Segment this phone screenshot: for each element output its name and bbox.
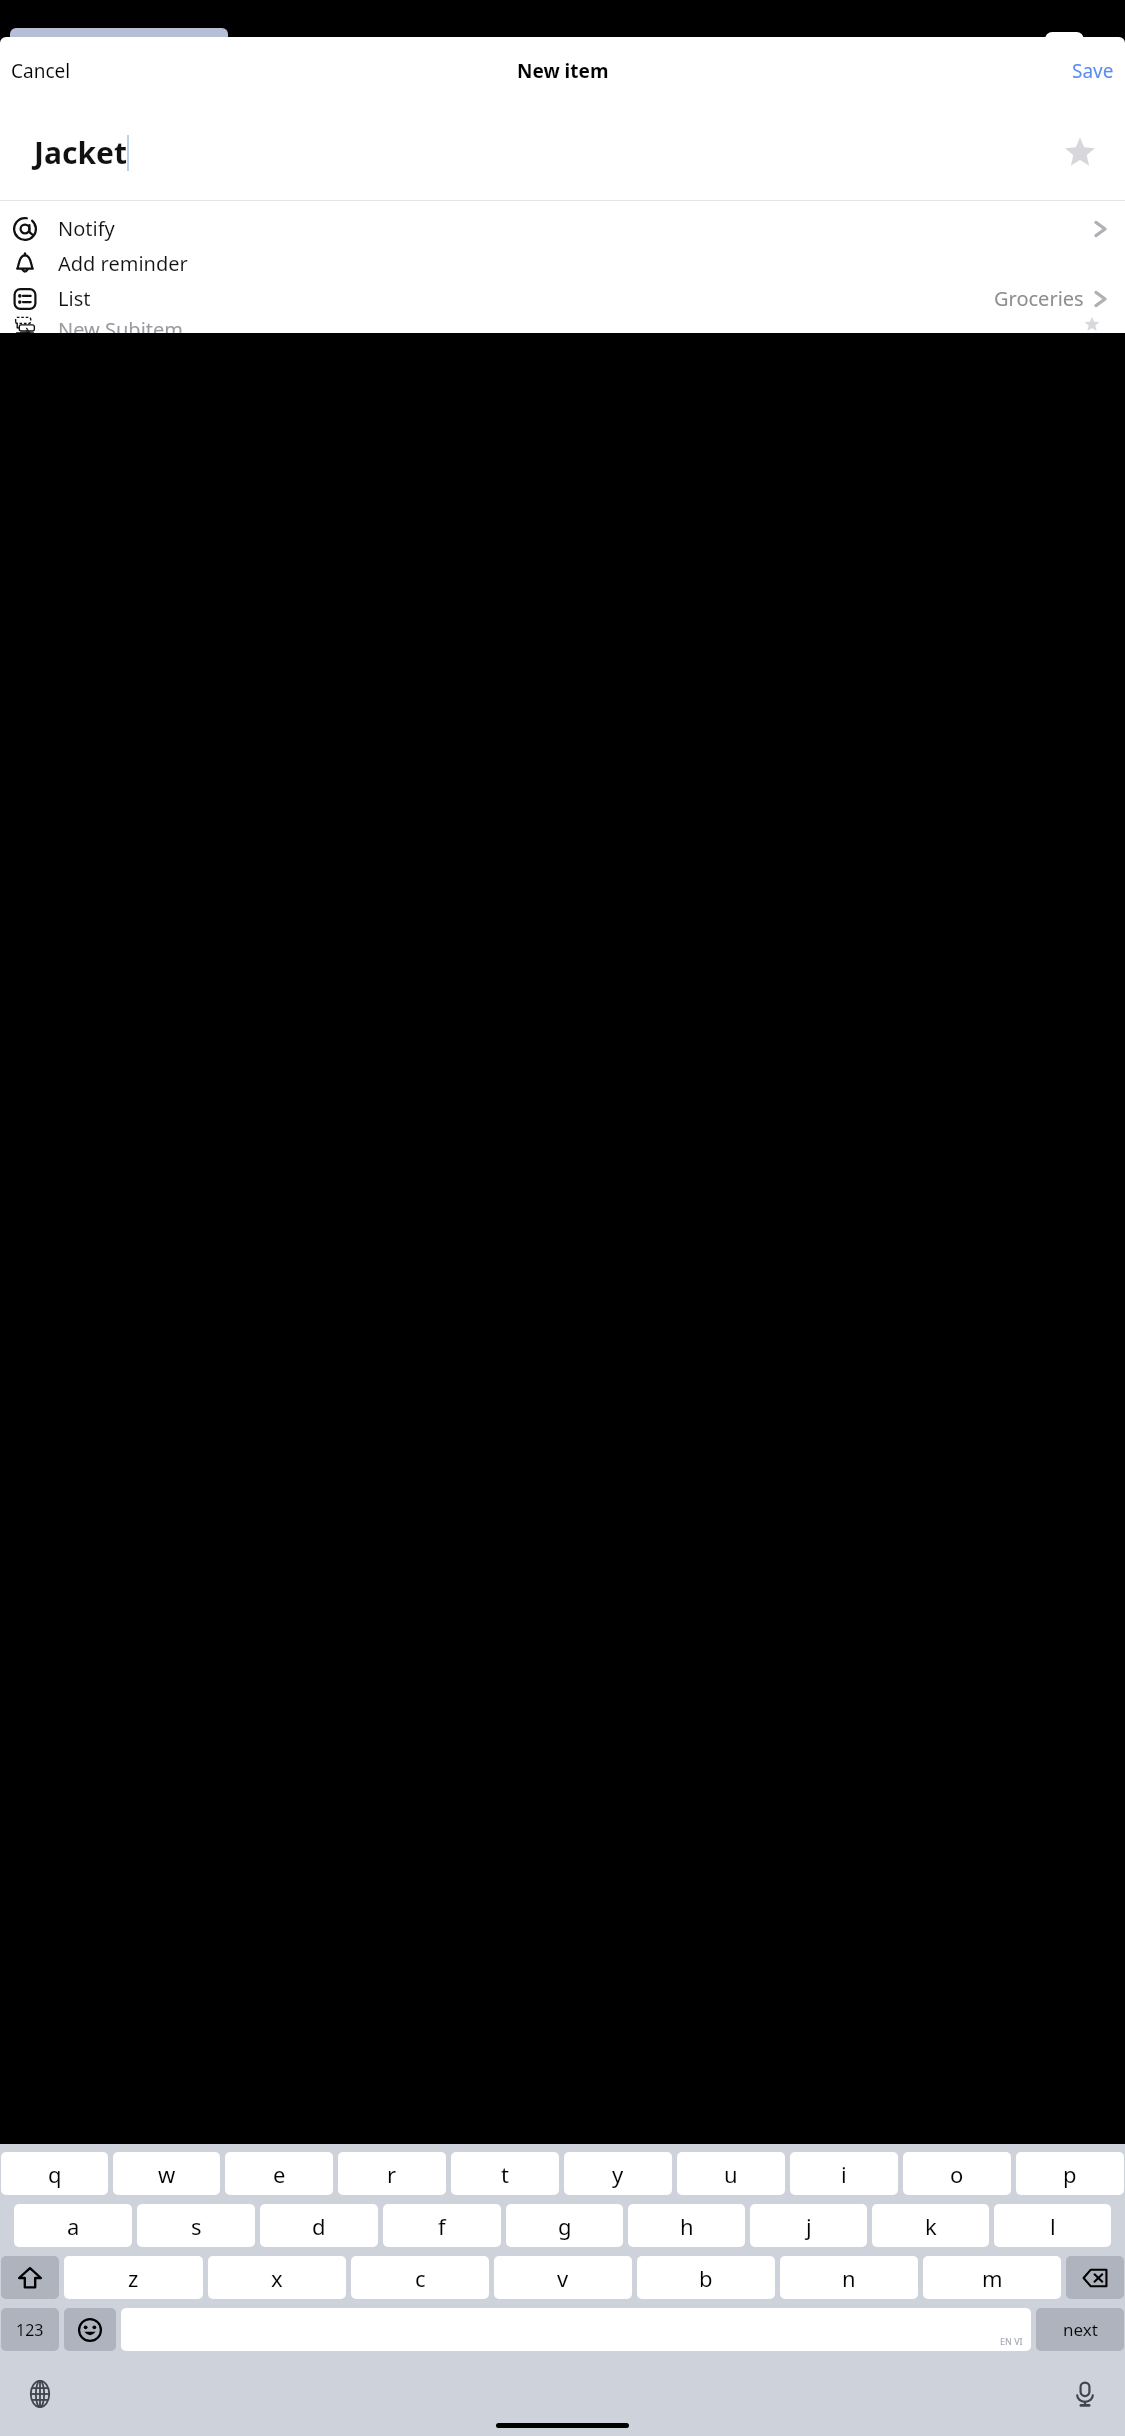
staticText: 78 bbox=[1050, 31, 1073, 58]
button[interactable]: t bbox=[451, 2152, 559, 2195]
staticText: l bbox=[1050, 2211, 1056, 2241]
button[interactable]: Shift bbox=[1, 2256, 59, 2299]
button[interactable]: Add reminder bbox=[0, 246, 1125, 281]
staticText: y bbox=[612, 2159, 624, 2189]
button[interactable]: c bbox=[351, 2256, 489, 2299]
button[interactable]: h bbox=[628, 2204, 745, 2247]
button[interactable]: a bbox=[14, 2204, 132, 2247]
staticText: New item bbox=[517, 58, 609, 84]
staticText: a bbox=[67, 2211, 80, 2241]
button[interactable]: s bbox=[137, 2204, 255, 2247]
staticText: List bbox=[58, 285, 91, 312]
staticText: g bbox=[558, 2211, 572, 2241]
staticText: Cancel bbox=[11, 58, 71, 84]
staticText: Add reminder bbox=[58, 250, 188, 277]
button[interactable]: o bbox=[903, 2152, 1011, 2195]
staticText: Save bbox=[1072, 58, 1114, 84]
staticText: d bbox=[312, 2211, 326, 2241]
button[interactable]: k bbox=[872, 2204, 989, 2247]
button[interactable]: p bbox=[1016, 2152, 1124, 2195]
staticText: m bbox=[982, 2263, 1003, 2293]
staticText: o bbox=[950, 2159, 964, 2189]
button[interactable]: New Subitem bbox=[0, 316, 1125, 333]
staticText: b bbox=[699, 2263, 713, 2293]
button[interactable]: m bbox=[923, 2256, 1061, 2299]
button[interactable]: n bbox=[780, 2256, 918, 2299]
staticText: i bbox=[841, 2159, 847, 2189]
button[interactable]: g bbox=[506, 2204, 623, 2247]
button[interactable]: Save bbox=[1061, 52, 1125, 90]
button[interactable]: v bbox=[494, 2256, 632, 2299]
staticText: q bbox=[48, 2159, 62, 2189]
staticText: x bbox=[271, 2263, 283, 2293]
button[interactable]: w bbox=[113, 2152, 220, 2195]
button[interactable]: l bbox=[994, 2204, 1111, 2247]
button[interactable]: j bbox=[750, 2204, 867, 2247]
button[interactable]: Voice input bbox=[1063, 2372, 1107, 2416]
button[interactable]: u bbox=[677, 2152, 785, 2195]
button[interactable]: q bbox=[1, 2152, 108, 2195]
button[interactable]: Emoji bbox=[64, 2308, 116, 2351]
button[interactable]: z bbox=[64, 2256, 203, 2299]
button[interactable]: List bbox=[0, 281, 1125, 316]
staticText: k bbox=[925, 2211, 937, 2241]
button[interactable]: 123 bbox=[1, 2308, 59, 2351]
button[interactable]: d bbox=[260, 2204, 378, 2247]
button[interactable]: Backspace bbox=[1066, 2256, 1124, 2299]
staticText: Notify bbox=[58, 215, 115, 242]
staticText: h bbox=[680, 2211, 694, 2241]
staticText: w bbox=[158, 2159, 176, 2189]
staticText: EN VI bbox=[1000, 2335, 1023, 2347]
button[interactable]: Notify bbox=[0, 211, 1125, 246]
staticText: c bbox=[415, 2263, 426, 2293]
staticText: 11:50 bbox=[48, 22, 128, 64]
staticText: n bbox=[842, 2263, 856, 2293]
staticText: Groceries bbox=[994, 285, 1084, 312]
staticText: 123 bbox=[16, 2319, 44, 2341]
staticText: next bbox=[1063, 2318, 1098, 2341]
button[interactable]: Favourite bbox=[1063, 136, 1097, 170]
button[interactable]: next bbox=[1036, 2308, 1124, 2351]
staticText: z bbox=[128, 2263, 139, 2293]
staticText: r bbox=[387, 2159, 397, 2189]
button[interactable]: x bbox=[208, 2256, 346, 2299]
button[interactable]: b bbox=[637, 2256, 775, 2299]
staticText: u bbox=[724, 2159, 738, 2189]
staticText: p bbox=[1063, 2159, 1077, 2189]
button[interactable]: f bbox=[383, 2204, 501, 2247]
staticText: e bbox=[273, 2159, 286, 2189]
staticText: f bbox=[438, 2211, 446, 2241]
button[interactable]: Cancel bbox=[0, 52, 82, 90]
staticText: v bbox=[557, 2263, 569, 2293]
staticText: t bbox=[501, 2159, 509, 2189]
button[interactable]: e bbox=[225, 2152, 333, 2195]
button[interactable]: i bbox=[790, 2152, 898, 2195]
button[interactable]: r bbox=[338, 2152, 446, 2195]
staticText: s bbox=[191, 2211, 202, 2241]
button[interactable]: y bbox=[564, 2152, 672, 2195]
staticText: Jacket bbox=[34, 132, 127, 173]
staticText: New Subitem bbox=[58, 316, 183, 333]
button[interactable]: Change keyboard bbox=[18, 2372, 62, 2416]
staticText: j bbox=[806, 2211, 812, 2241]
